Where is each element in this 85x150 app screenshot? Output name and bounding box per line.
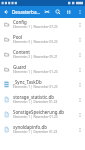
button[interactable]: Select — [41, 6, 52, 18]
button[interactable]: Item options — [74, 18, 85, 31]
button[interactable]: Item options — [74, 93, 85, 106]
button[interactable]: Config — [0, 18, 85, 33]
button[interactable]: More options — [74, 6, 85, 18]
staticText: SonstigeSpeicherung.db — [13, 109, 65, 115]
staticText: Elemente: 1 | November 01-23 — [13, 85, 58, 89]
button[interactable]: SonstigeSpeicherung.db — [0, 108, 85, 123]
staticText: Desasterbackup_x — [12, 9, 42, 15]
staticText: Config — [13, 19, 27, 25]
staticText: Elemente: 1 | November 07-23 — [13, 25, 58, 29]
staticText: Elemente: 2 | November 05-21 — [13, 55, 58, 59]
staticText: _Sync_TaskDb — [13, 79, 42, 85]
staticText: Guard — [13, 64, 26, 70]
button[interactable]: Back — [0, 6, 11, 18]
staticText: Elemente: 3 | November 03-23 — [13, 40, 58, 44]
button[interactable]: Item options — [74, 33, 85, 46]
staticText: Content — [13, 49, 30, 55]
button[interactable]: Item options — [74, 78, 85, 91]
button[interactable]: Content — [0, 48, 85, 63]
staticText: Elemente: 1 | Dezember 01-23 — [13, 130, 58, 134]
staticText: Elemente: 1 | Dezember 01-23 — [13, 100, 58, 104]
staticText: storage_statistic.db — [13, 94, 54, 100]
button[interactable]: storage_statistic.db — [0, 93, 85, 108]
button[interactable]: Item options — [74, 123, 85, 136]
button[interactable]: Guard — [0, 63, 85, 78]
staticText: Pool — [13, 34, 23, 40]
button[interactable]: Search — [52, 6, 64, 18]
button[interactable]: Pool — [0, 33, 85, 48]
button[interactable]: Item options — [74, 108, 85, 121]
button[interactable]: Grid view — [64, 6, 74, 18]
button[interactable]: Item options — [74, 63, 85, 76]
button[interactable]: synoldapinfo.db — [0, 123, 85, 138]
button[interactable]: Item options — [74, 48, 85, 61]
button[interactable]: _Sync_TaskDb — [0, 78, 85, 93]
staticText: Elemente: 1 | November 01-23 — [13, 115, 58, 119]
staticText: Elemente: 1 | November 01-23 — [13, 70, 58, 74]
staticText: synoldapinfo.db — [13, 124, 47, 130]
